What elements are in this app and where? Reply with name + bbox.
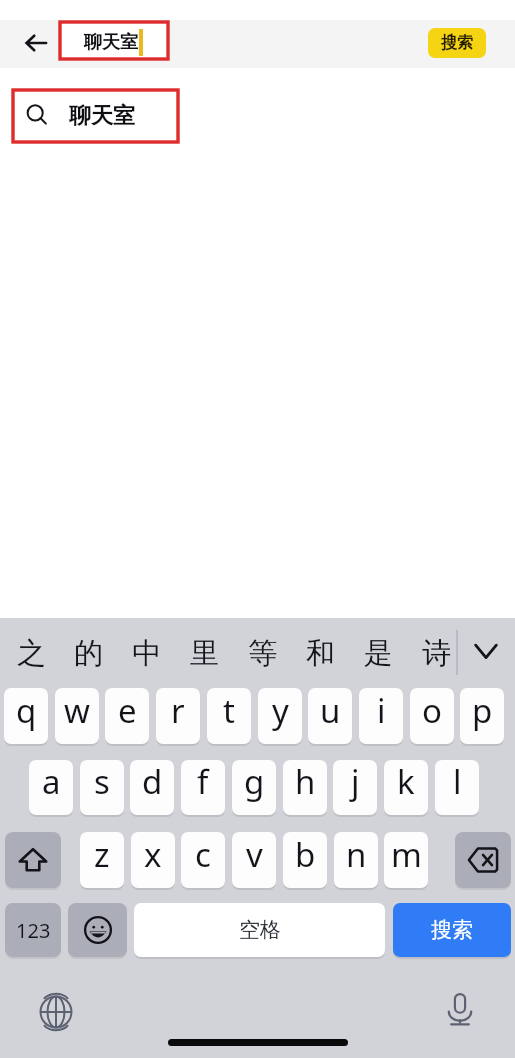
button[interactable]: m [384,832,428,888]
staticText: 是 [364,635,393,672]
button[interactable]: 里 [178,627,230,679]
button[interactable]: 聊天室 [13,90,178,142]
button[interactable]: Shift [5,832,61,888]
staticText: 等 [248,635,277,672]
staticText: i [377,688,386,733]
staticText: c [195,832,211,877]
button[interactable]: Backspace [455,832,511,888]
button[interactable]: h [283,760,327,815]
staticText: 聊天室 [84,31,138,54]
staticText: r [171,688,185,733]
button[interactable]: f [181,760,225,815]
button[interactable]: r [156,688,200,744]
button[interactable]: Search input field [60,22,168,59]
staticText: n [346,832,367,877]
button[interactable]: i [359,688,403,744]
button[interactable]: 是 [352,627,404,679]
button[interactable]: 之 [5,627,57,679]
staticText: 空格 [239,917,281,943]
button[interactable]: 中 [120,627,172,679]
staticText: b [295,832,316,877]
button[interactable]: 123 [5,903,61,957]
button[interactable]: a [29,760,73,815]
staticText: y [272,688,289,733]
button[interactable]: y [258,688,302,744]
button[interactable]: j [333,760,377,815]
staticText: j [351,760,360,804]
staticText: v [246,832,263,877]
staticText: 的 [74,635,103,672]
staticText: f [197,760,209,804]
staticText: x [144,832,162,877]
staticText: q [16,688,37,733]
staticText: u [320,688,341,733]
staticText: 聊天室 [69,102,135,130]
button[interactable]: 诗 [410,627,462,679]
staticText: t [223,688,235,733]
button[interactable]: u [308,688,352,744]
staticText: h [295,760,316,804]
staticText: k [397,760,415,804]
staticText: s [94,760,110,804]
staticText: 诗 [422,635,451,672]
button[interactable]: w [55,688,99,744]
button[interactable]: b [283,832,327,888]
button[interactable]: Back [12,19,60,67]
button[interactable]: 和 [294,627,346,679]
button[interactable]: Voice input [436,985,484,1033]
button[interactable]: g [232,760,276,815]
staticText: w [64,688,90,733]
staticText: l [453,760,462,804]
staticText: e [118,688,137,733]
staticText: 和 [306,635,335,672]
button[interactable]: Change input language [32,988,80,1036]
button[interactable]: Hide keyboard [462,624,510,672]
button[interactable]: n [334,832,378,888]
button[interactable]: v [232,832,276,888]
button[interactable]: q [4,688,48,744]
button[interactable]: l [435,760,479,815]
button[interactable]: k [384,760,428,815]
staticText: 之 [17,635,46,672]
button[interactable]: e [105,688,149,744]
button[interactable]: Emoji [68,903,127,957]
staticText: a [42,760,61,804]
staticText: 123 [16,917,51,944]
button[interactable]: c [181,832,225,888]
staticText: 搜索 [441,33,473,53]
button[interactable]: t [207,688,251,744]
button[interactable]: o [410,688,454,744]
button[interactable]: s [80,760,124,815]
button[interactable]: p [460,688,504,744]
button[interactable]: 搜索 [428,28,486,58]
staticText: 搜索 [431,917,473,943]
staticText: 中 [132,635,161,672]
staticText: z [94,832,110,877]
button[interactable]: x [131,832,175,888]
staticText: o [422,688,442,733]
button[interactable]: z [80,832,124,888]
staticText: m [391,832,422,877]
button[interactable]: 的 [62,627,114,679]
staticText: p [472,688,493,733]
button[interactable]: 搜索 [393,903,511,957]
staticText: d [142,760,163,804]
staticText: g [244,760,265,804]
button[interactable]: 空格 [134,903,385,957]
button[interactable]: d [130,760,174,815]
button[interactable]: 等 [236,627,288,679]
staticText: 里 [190,635,219,672]
